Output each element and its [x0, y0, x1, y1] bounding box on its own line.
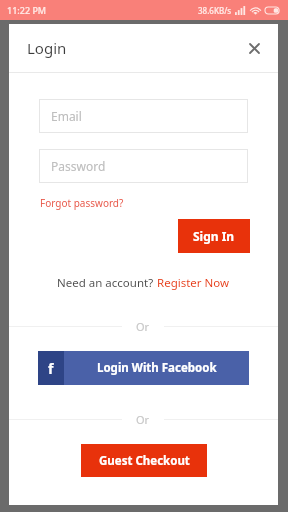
button[interactable]: f	[38, 351, 249, 385]
button[interactable]: Email	[39, 99, 248, 133]
staticText: f	[48, 359, 54, 378]
staticText: Email	[51, 108, 82, 124]
button[interactable]: Register Now	[157, 275, 230, 291]
button[interactable]: Close	[243, 37, 265, 59]
button[interactable]: Forgot password?	[40, 196, 124, 210]
staticText: Or	[136, 319, 150, 334]
staticText: Password	[51, 158, 106, 174]
staticText: Login With Facebook	[97, 360, 217, 376]
staticText: Sign In	[193, 228, 235, 244]
staticText: Guest Checkout	[99, 453, 190, 469]
button[interactable]: Guest Checkout	[81, 444, 207, 477]
staticText: Need an account?	[57, 275, 157, 291]
staticText: Login	[27, 38, 67, 58]
staticText: Or	[136, 412, 150, 427]
staticText: 11:22 PM	[7, 4, 47, 16]
button[interactable]: Sign In	[178, 219, 250, 253]
button[interactable]: Password	[39, 149, 248, 183]
staticText: 38.6KB/s	[198, 5, 232, 16]
